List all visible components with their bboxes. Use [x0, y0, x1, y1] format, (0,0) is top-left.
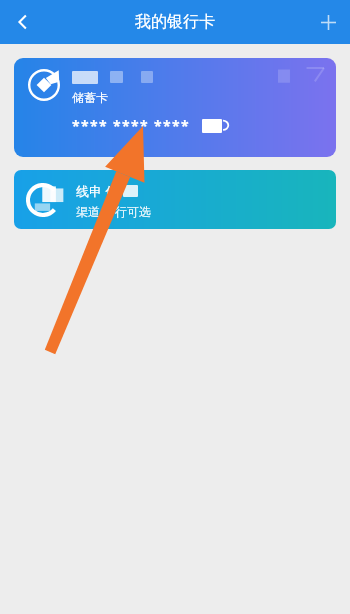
staticText: 渠道 多行可选: [76, 203, 152, 219]
staticText: 线申 信: [76, 182, 119, 200]
button[interactable]: 储蓄卡: [14, 58, 336, 157]
staticText: 我的银行卡: [135, 12, 215, 32]
button[interactable]: Back: [0, 0, 46, 44]
button[interactable]: 线申 信: [14, 170, 336, 229]
staticText: 储蓄卡: [72, 90, 108, 105]
staticText: **** **** ****: [72, 116, 190, 135]
button[interactable]: Add card: [306, 0, 350, 44]
